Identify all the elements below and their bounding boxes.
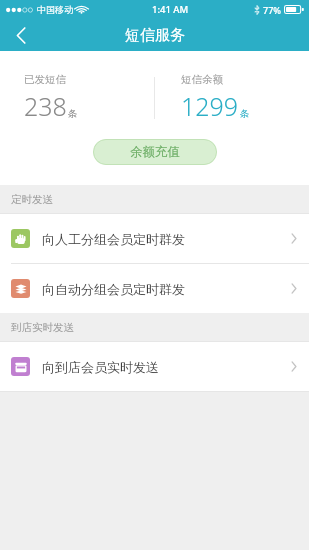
staticText: 77%: [263, 4, 281, 16]
other: 自动分组定时群发: [291, 283, 297, 294]
staticText: 中国移动: [37, 4, 73, 15]
button[interactable]: 向自动分组会员定时群发: [0, 264, 309, 313]
staticText: 已发短信: [24, 73, 66, 86]
button[interactable]: 余额充值: [93, 139, 217, 165]
staticText: 1:41 AM: [152, 3, 189, 16]
staticText: 定时发送: [11, 193, 53, 206]
staticText: 238: [24, 89, 67, 123]
staticText: 向到店会员实时发送: [42, 359, 159, 375]
button[interactable]: 返回: [0, 19, 42, 51]
button[interactable]: 向人工分组会员定时群发: [0, 214, 309, 263]
staticText: 到店实时发送: [11, 321, 74, 334]
staticText: 短信余额: [181, 73, 223, 86]
staticText: 余额充值: [130, 144, 180, 160]
staticText: 向自动分组会员定时群发: [42, 281, 185, 297]
staticText: 条: [240, 108, 250, 120]
other: 人工分组定时群发: [291, 233, 297, 244]
staticText: 向人工分组会员定时群发: [42, 231, 185, 247]
button[interactable]: 向到店会员实时发送: [0, 342, 309, 391]
staticText: 条: [68, 108, 78, 120]
staticText: 1299: [181, 89, 239, 123]
other: 到店会员实时发送: [291, 361, 297, 372]
staticText: 短信服务: [125, 26, 185, 45]
